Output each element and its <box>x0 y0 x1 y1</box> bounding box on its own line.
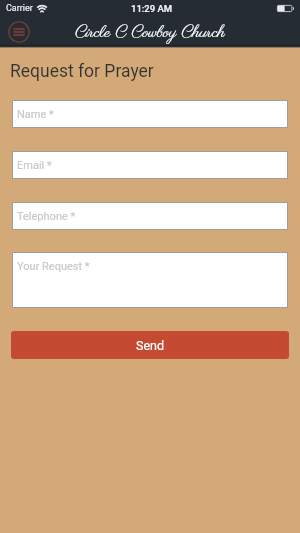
button[interactable]: Send <box>11 331 289 359</box>
staticText: Carrier <box>6 3 33 14</box>
staticText: Request for Prayer <box>10 61 154 82</box>
staticText: Your Request * <box>17 260 90 273</box>
staticText: 11:29 AM <box>131 3 173 14</box>
staticText: Send <box>136 338 165 353</box>
button[interactable]: Your Request * <box>12 252 288 308</box>
staticText: Telephone * <box>17 210 76 223</box>
staticText: Name * <box>17 108 54 121</box>
staticText: Email * <box>17 159 52 172</box>
button[interactable]: Open navigation menu <box>8 21 30 43</box>
button[interactable]: Telephone * <box>12 202 288 230</box>
button[interactable]: Name * <box>12 100 288 128</box>
button[interactable]: Email * <box>12 151 288 179</box>
staticText: Circle C Cowboy Church <box>75 21 225 44</box>
